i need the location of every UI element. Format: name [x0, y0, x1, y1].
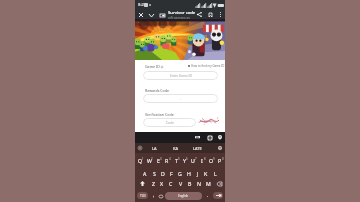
staticText: Verification Code	[145, 112, 174, 117]
button[interactable]: LA	[152, 146, 157, 151]
button[interactable]: K	[202, 168, 210, 179]
staticText: LATE	[193, 146, 202, 151]
staticText: English	[178, 194, 189, 198]
staticText: E	[157, 157, 160, 164]
staticText: 4	[169, 157, 171, 161]
staticText: 2	[151, 157, 153, 161]
staticText: V	[179, 180, 183, 187]
button[interactable]: Recents	[206, 134, 213, 141]
button[interactable]: Share	[196, 11, 203, 18]
button[interactable]: English	[165, 192, 202, 200]
staticText: P	[218, 157, 222, 164]
button[interactable]: L	[211, 168, 219, 179]
staticText: 8:23	[138, 2, 147, 8]
button[interactable]: D	[159, 168, 167, 179]
staticText: KA	[173, 146, 179, 151]
button[interactable]: G	[176, 168, 184, 179]
button[interactable]: U	[189, 155, 197, 166]
staticText: ,	[153, 192, 155, 198]
button[interactable]: S	[150, 168, 158, 179]
staticText: LA	[152, 146, 157, 151]
staticText: 1	[142, 157, 144, 161]
staticText: J	[197, 170, 199, 177]
button[interactable]: Code	[143, 118, 196, 127]
button[interactable]: J	[194, 168, 202, 179]
button[interactable]: Clipboard	[137, 145, 143, 151]
staticText: Rewards Code	[145, 88, 169, 93]
staticText: R	[165, 157, 169, 164]
button[interactable]: W	[145, 155, 153, 166]
staticText: S	[153, 170, 156, 177]
button[interactable]: R	[163, 155, 171, 166]
button[interactable]: KA	[173, 146, 179, 151]
button[interactable]: Picture in picture	[159, 12, 165, 18]
button[interactable]: E	[154, 155, 162, 166]
button[interactable]: Backspace	[215, 178, 223, 189]
staticText: M	[206, 180, 211, 187]
button[interactable]: A	[141, 168, 149, 179]
staticText: H	[187, 170, 191, 177]
button[interactable]: Z	[149, 178, 157, 189]
button[interactable]: Y	[180, 155, 188, 166]
staticText: 3	[160, 157, 162, 161]
staticText: U	[191, 157, 195, 164]
button[interactable]: More options	[217, 11, 224, 18]
staticText: Survivor code	[168, 10, 196, 16]
button[interactable]: Shift	[138, 178, 146, 189]
staticText: Z	[152, 180, 155, 187]
staticText: D	[161, 170, 165, 177]
button[interactable]: H	[185, 168, 193, 179]
staticText: -	[180, 97, 182, 101]
staticText: I	[201, 157, 203, 164]
button[interactable]: X	[158, 178, 166, 189]
staticText: T	[175, 157, 178, 164]
button[interactable]: Close	[138, 12, 144, 18]
staticText: Q	[138, 157, 143, 164]
button[interactable]: N	[195, 178, 203, 189]
staticText: Enter Game ID	[170, 74, 192, 78]
button[interactable]: I	[198, 155, 206, 166]
button[interactable]: Symbols	[137, 192, 148, 199]
button[interactable]: V	[177, 178, 185, 189]
button[interactable]: Emoji	[158, 193, 164, 199]
staticText: K	[204, 170, 208, 177]
button[interactable]: F	[167, 168, 175, 179]
staticText: 8	[204, 157, 206, 161]
button[interactable]: B	[186, 178, 194, 189]
staticText: 6	[186, 157, 188, 161]
button[interactable]: Hide keyboard	[194, 134, 201, 141]
staticText: C	[169, 180, 173, 187]
button[interactable]: Q	[136, 155, 144, 166]
staticText: 5	[178, 157, 180, 161]
button[interactable]: P	[216, 155, 224, 166]
button[interactable]: Enter Game ID	[143, 71, 218, 80]
button[interactable]: How to find my Game ID	[188, 64, 225, 68]
button[interactable]: T	[172, 155, 180, 166]
button[interactable]: Enter	[213, 192, 223, 199]
staticText: L	[214, 170, 217, 177]
button[interactable]: Collapse	[148, 12, 154, 18]
staticText: 7	[195, 157, 197, 161]
button[interactable]: O	[207, 155, 215, 166]
staticText: .	[207, 192, 209, 198]
button[interactable]: LATE	[193, 146, 202, 151]
staticText: 9	[213, 157, 215, 161]
button[interactable]: -	[143, 94, 218, 103]
button[interactable]: Voice input	[217, 145, 223, 151]
staticText: X	[160, 180, 164, 187]
staticText: F	[170, 170, 173, 177]
button[interactable]: C	[167, 178, 175, 189]
button[interactable]: Home	[216, 134, 223, 141]
staticText: How to find my Game ID	[191, 64, 225, 68]
staticText: 0	[222, 157, 224, 161]
staticText: N	[197, 180, 201, 187]
staticText: gift.xxxxxxx.xx	[168, 16, 190, 19]
staticText: ?123	[140, 194, 146, 198]
staticText: Game ID	[145, 64, 160, 69]
staticText: B	[188, 180, 192, 187]
staticText: Y	[183, 157, 186, 164]
staticText: Code	[166, 121, 174, 125]
staticText: A	[143, 170, 147, 177]
button[interactable]: Bookmark	[207, 11, 214, 18]
button[interactable]: M	[204, 178, 212, 189]
